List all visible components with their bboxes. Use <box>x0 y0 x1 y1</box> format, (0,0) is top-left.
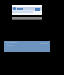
button[interactable] <box>12 17 42 20</box>
button[interactable] <box>4 41 50 52</box>
button[interactable] <box>12 5 42 15</box>
